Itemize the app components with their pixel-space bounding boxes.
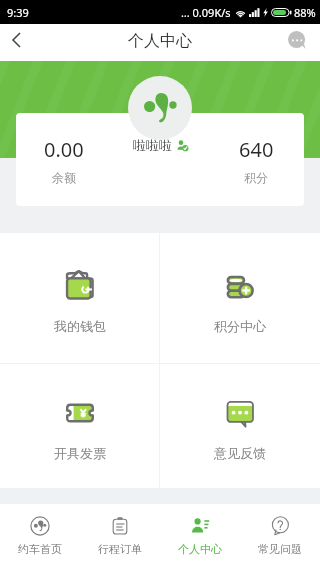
staticText: 约车首页 — [18, 542, 62, 556]
button[interactable]: 积分中心 — [160, 233, 320, 363]
staticText: 行程订单 — [98, 542, 142, 556]
button[interactable]: 行程订单 — [80, 504, 160, 568]
staticText: 88% — [294, 5, 316, 20]
staticText: 个人中心 — [128, 31, 192, 51]
staticText: 积分 — [244, 170, 268, 185]
staticText: 个人中心 — [178, 542, 222, 556]
staticText: 我的钱包 — [54, 318, 106, 334]
button[interactable]: 开具发票 — [0, 364, 159, 488]
button[interactable]: 0.00 — [16, 113, 304, 206]
staticText: 余额 — [52, 170, 76, 185]
button[interactable]: Back — [0, 24, 33, 55]
staticText: 开具发票 — [54, 445, 106, 461]
button[interactable]: 意见反馈 — [160, 364, 320, 488]
button[interactable]: Messages — [276, 21, 318, 58]
button[interactable]: 约车首页 — [0, 504, 80, 568]
button[interactable]: Avatar — [128, 76, 192, 140]
staticText: … 0.09K/s — [181, 5, 231, 20]
staticText: 9:39 — [7, 5, 29, 20]
button[interactable]: 我的钱包 — [0, 233, 159, 363]
staticText: 积分中心 — [214, 318, 266, 334]
staticText: 640 — [239, 136, 274, 163]
staticText: 啦啦啦 — [133, 137, 172, 153]
staticText: 意见反馈 — [214, 445, 266, 461]
button[interactable]: 个人中心 — [160, 504, 240, 568]
button[interactable]: 常见问题 — [240, 504, 320, 568]
staticText: 常见问题 — [258, 542, 302, 556]
staticText: 0.00 — [44, 136, 84, 163]
